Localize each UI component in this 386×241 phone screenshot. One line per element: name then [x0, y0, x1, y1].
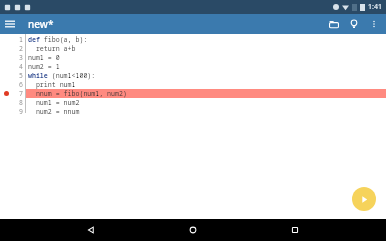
- button[interactable]: 4: [0, 62, 386, 71]
- button[interactable]: 6: [0, 80, 386, 89]
- button[interactable]: 9: [0, 107, 386, 116]
- button[interactable]: Hints: [344, 14, 364, 34]
- staticText: 9: [19, 107, 23, 116]
- staticText: nnum = fibo(num1, num2): [28, 89, 127, 98]
- button[interactable]: 8: [0, 98, 386, 107]
- button[interactable]: Recent apps: [284, 219, 306, 241]
- staticText: 5: [19, 71, 23, 80]
- staticText: num2 = 1: [28, 62, 60, 71]
- staticText: print num1: [28, 80, 76, 89]
- button[interactable]: 1: [0, 35, 386, 44]
- staticText: 1:41: [368, 2, 382, 12]
- staticText: 8: [19, 98, 23, 107]
- staticText: num2 = nnum: [28, 107, 80, 116]
- staticText: 2: [19, 44, 23, 53]
- button[interactable]: Run: [352, 187, 376, 211]
- staticText: while (num1<100):: [28, 71, 96, 80]
- button[interactable]: Home: [182, 219, 204, 241]
- button[interactable]: 7: [0, 89, 386, 98]
- button[interactable]: Open navigation drawer: [0, 14, 20, 34]
- staticText: def fibo(a, b):: [28, 35, 88, 44]
- staticText: 7: [19, 89, 23, 98]
- staticText: 3: [19, 53, 23, 62]
- staticText: 1: [19, 35, 23, 44]
- button[interactable]: Back: [80, 219, 102, 241]
- staticText: num1 = num2: [28, 98, 80, 107]
- button[interactable]: 2: [0, 44, 386, 53]
- button[interactable]: new*: [28, 17, 54, 31]
- button[interactable]: 3: [0, 53, 386, 62]
- staticText: return a+b: [28, 44, 76, 53]
- staticText: 6: [19, 80, 23, 89]
- button[interactable]: 5: [0, 71, 386, 80]
- staticText: 4: [19, 62, 23, 71]
- staticText: num1 = 0: [28, 53, 60, 62]
- button[interactable]: More options: [364, 14, 384, 34]
- button[interactable]: Open file: [324, 14, 344, 34]
